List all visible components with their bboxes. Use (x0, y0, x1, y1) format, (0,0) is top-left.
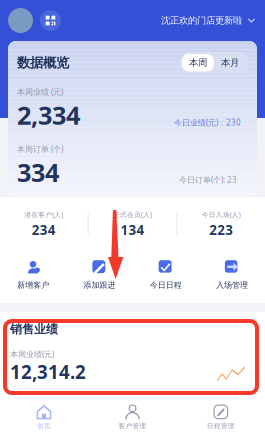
button[interactable]: 今日入场(人) (177, 210, 265, 239)
button[interactable]: 潜在客户(人) (0, 210, 88, 239)
staticText: 销售业绩 (10, 322, 58, 337)
staticText: 234 (32, 221, 56, 239)
button[interactable]: 本周 (182, 54, 214, 71)
staticText: 首页 (37, 422, 51, 430)
staticText: 正式会员(人) (113, 210, 152, 219)
button[interactable]: 新增客户 (0, 260, 66, 290)
button[interactable]: 客户管理 (88, 404, 177, 430)
button[interactable]: 今日日程 (132, 260, 199, 290)
staticText: 今日日程 (150, 280, 182, 290)
button[interactable]: 日程管理 (177, 404, 265, 430)
staticText: 客户管理 (118, 422, 146, 430)
staticText: 134 (120, 221, 144, 239)
staticText: 本周 (189, 57, 207, 68)
button[interactable]: 本月 (214, 54, 246, 71)
staticText: 潜在客户(人) (24, 210, 63, 219)
staticText: 今日订单(个): 23 (179, 174, 237, 185)
staticText: 今日业绩(元)：230 (174, 117, 241, 128)
staticText: 本周业绩(元) (10, 349, 54, 359)
staticText: 本周订单 (个) (17, 144, 63, 154)
staticText: 入场管理 (216, 280, 248, 290)
staticText: 添加跟进 (83, 280, 115, 290)
staticText: 沈正欢的门店更新啦 (161, 15, 242, 26)
staticText: 新增客户 (17, 280, 49, 290)
staticText: 2,334 (17, 98, 80, 132)
button[interactable]: 沈正欢的门店更新啦 (161, 15, 257, 26)
staticText: 12,314.2 (10, 359, 86, 384)
button[interactable]: 扫一扫 (40, 10, 61, 31)
button[interactable]: 添加跟进 (66, 260, 132, 290)
button[interactable]: 首页 (0, 404, 88, 430)
button[interactable]: 正式会员(人) (89, 210, 176, 239)
staticText: 334 (17, 155, 59, 189)
staticText: 今日入场(人) (202, 210, 241, 219)
staticText: 数据概览 (17, 54, 69, 71)
button[interactable]: 入场管理 (199, 260, 265, 290)
staticText: 本月 (221, 57, 239, 68)
staticText: 本周业绩 (元) (17, 86, 63, 97)
staticText: 日程管理 (207, 422, 235, 430)
staticText: 223 (209, 221, 233, 239)
